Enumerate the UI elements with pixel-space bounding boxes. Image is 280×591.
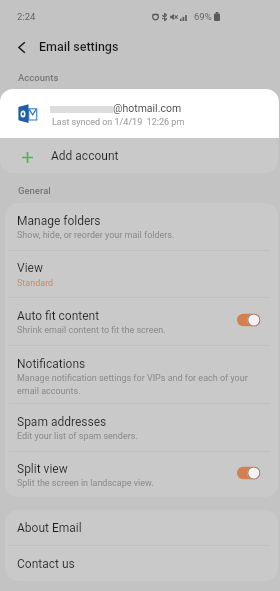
button[interactable]: Spam addresses: [5, 404, 278, 451]
button[interactable]: Contact us: [5, 546, 278, 581]
staticText: @hotmail.com: [113, 102, 182, 114]
staticText: View: [17, 261, 43, 275]
button[interactable]: Navigate up: [11, 37, 32, 58]
staticText: Edit your list of spam senders.: [17, 431, 138, 442]
staticText: Spam addresses: [17, 415, 107, 429]
button[interactable]: Toggle: [237, 312, 260, 328]
button[interactable]: About Email: [5, 510, 278, 545]
staticText: Last synced on 1/4/19 12:26 pm: [52, 117, 185, 128]
staticText: General: [18, 185, 51, 196]
staticText: Add account: [51, 149, 119, 163]
staticText: Contact us: [17, 557, 75, 571]
button[interactable]: Split view: [5, 452, 278, 497]
staticText: Manage folders: [17, 214, 101, 228]
button[interactable]: View: [5, 251, 278, 297]
button[interactable]: Manage folders: [5, 203, 278, 250]
button[interactable]: Auto fit content: [5, 298, 278, 345]
staticText: 2:24: [17, 11, 36, 22]
staticText: Manage notification settings for VIPs an…: [17, 373, 267, 396]
button[interactable]: Add account: [0, 138, 278, 173]
staticText: Auto fit content: [17, 309, 100, 323]
staticText: Show, hide, or reorder your mail folders…: [17, 230, 175, 241]
button[interactable]: Notifications: [5, 346, 278, 403]
staticText: Email settings: [39, 39, 119, 54]
staticText: Split the screen in landscape view.: [17, 478, 154, 489]
staticText: 69%: [194, 11, 212, 22]
button[interactable]: Toggle: [237, 465, 260, 481]
staticText: Notifications: [17, 357, 86, 371]
staticText: Split view: [17, 462, 68, 476]
staticText: Standard: [17, 278, 54, 289]
staticText: Shrink email content to fit the screen.: [17, 325, 166, 336]
staticText: Accounts: [18, 72, 59, 83]
button[interactable]: @hotmail.com: [0, 89, 279, 138]
staticText: About Email: [17, 521, 82, 535]
